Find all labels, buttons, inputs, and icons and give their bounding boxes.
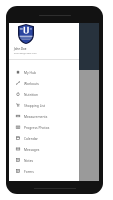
button[interactable]: Workouts	[9, 77, 79, 88]
staticText: Measurements	[24, 114, 48, 118]
staticText: Calendar	[24, 136, 38, 140]
staticText: john.doe@client.com	[14, 52, 37, 55]
staticText: Progress Photos	[24, 125, 50, 129]
staticText: John Doe	[14, 47, 27, 51]
staticText: Workouts	[24, 81, 39, 85]
button[interactable]: Messages	[9, 143, 79, 154]
button[interactable]: Nutrition	[9, 88, 79, 99]
staticText: Forms	[24, 169, 34, 173]
staticText: Shopping List	[24, 103, 46, 107]
staticText: Messages	[24, 147, 40, 151]
staticText: My Hub	[24, 70, 37, 74]
button[interactable]: Calendar	[9, 132, 79, 143]
button[interactable]: Progress Photos	[9, 121, 79, 132]
button[interactable]: Forms	[9, 165, 79, 176]
button[interactable]: Shopping List	[9, 99, 79, 110]
staticText: Notes	[24, 158, 34, 162]
staticText: Nutrition	[24, 92, 39, 96]
button[interactable]: Notes	[9, 154, 79, 165]
button[interactable]: Measurements	[9, 110, 79, 121]
button[interactable]: My Hub	[9, 66, 79, 77]
